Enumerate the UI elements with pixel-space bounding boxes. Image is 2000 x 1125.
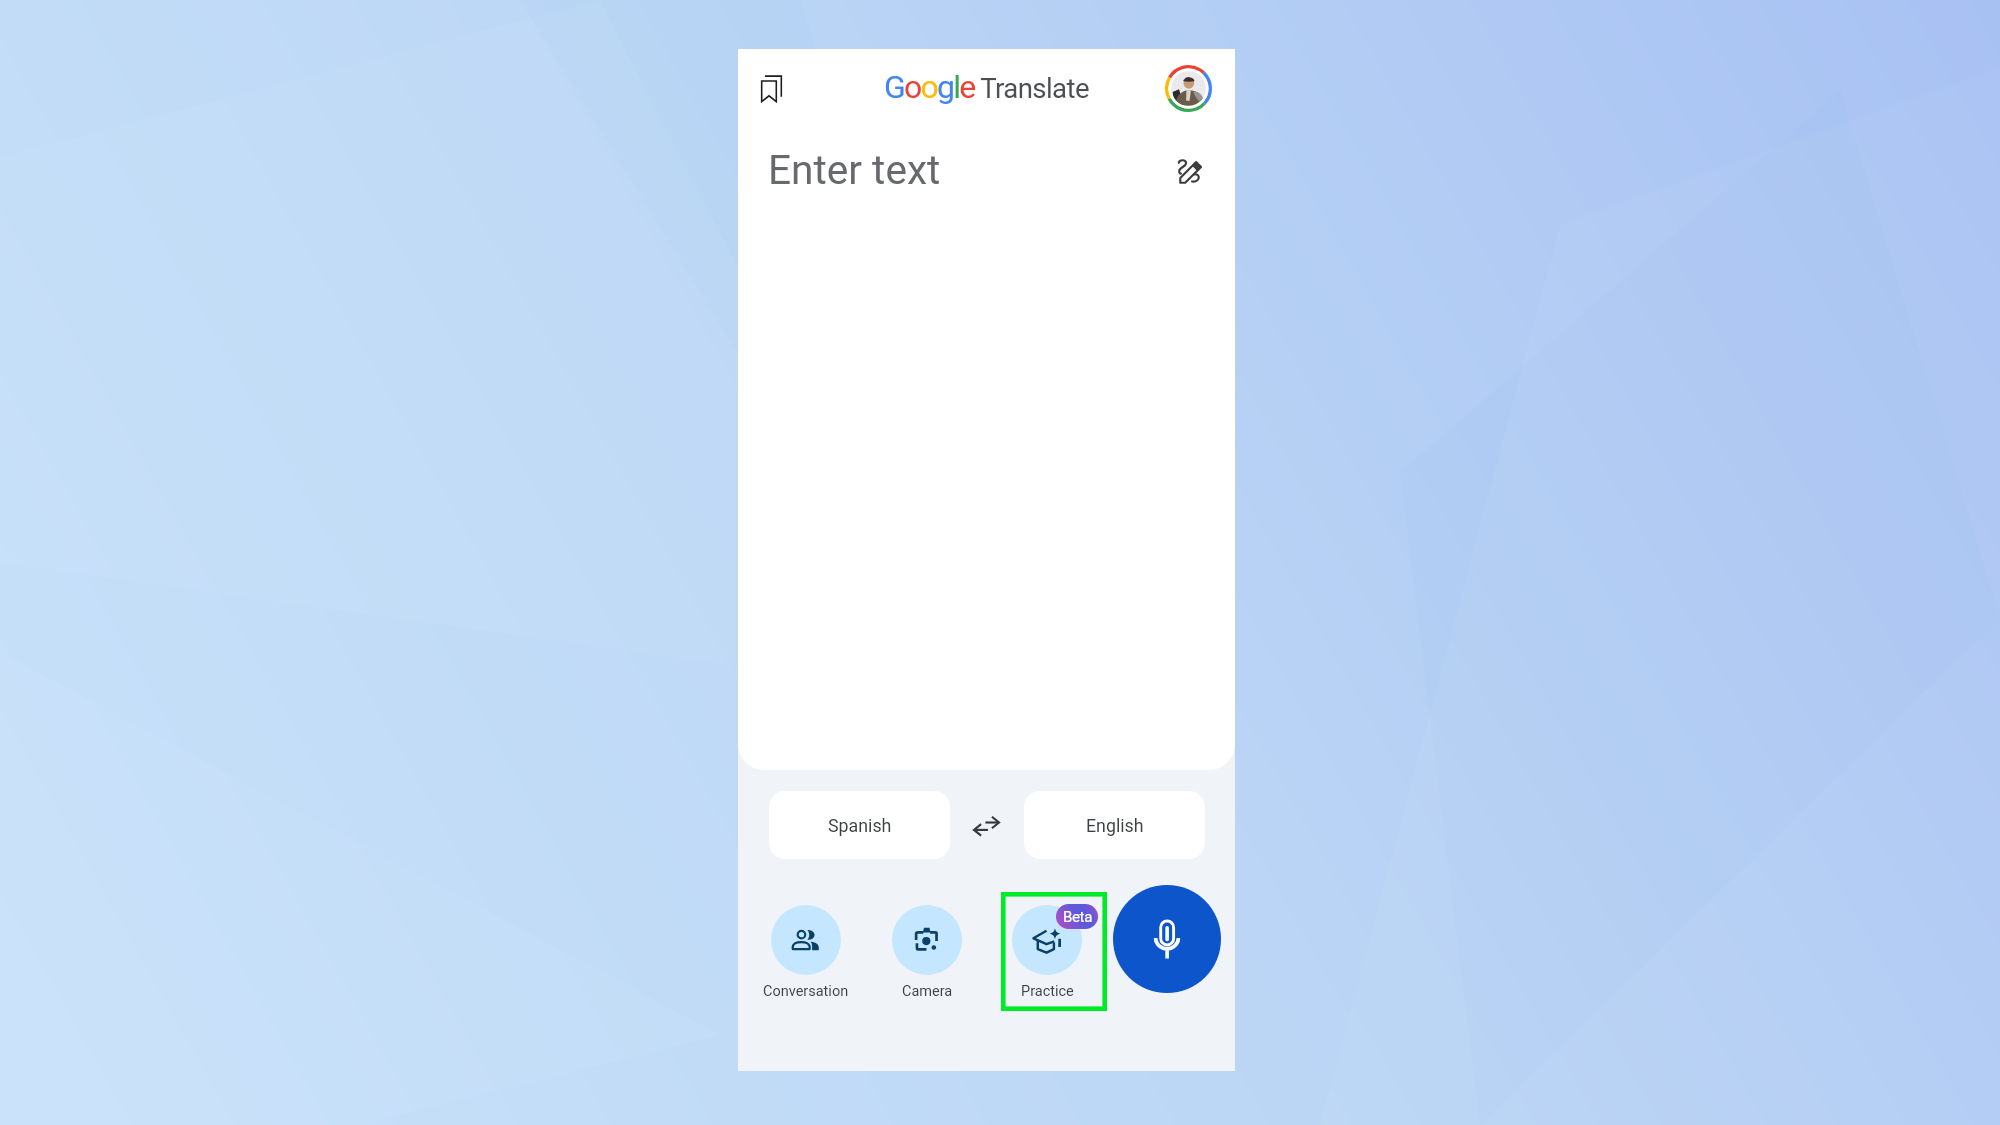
- staticText: Practice: [1021, 983, 1074, 1000]
- button[interactable]: English: [1024, 791, 1205, 859]
- button[interactable]: Voice input: [1113, 885, 1221, 993]
- staticText: Google Translate: [884, 68, 1089, 106]
- button[interactable]: Spanish: [769, 791, 950, 859]
- staticText: Conversation: [763, 983, 849, 1000]
- button[interactable]: Google Translate: [884, 68, 1089, 106]
- button[interactable]: Saved translations: [752, 69, 790, 107]
- button[interactable]: Conversation: [753, 905, 859, 1000]
- button[interactable]: Swap languages: [961, 802, 1011, 850]
- button[interactable]: Practice: [1012, 905, 1098, 1000]
- button[interactable]: Enter text: [756, 131, 1156, 203]
- staticText: Spanish: [828, 815, 892, 836]
- button[interactable]: Camera: [874, 905, 980, 1000]
- button[interactable]: Handwriting input: [1170, 151, 1210, 191]
- staticText: Camera: [902, 983, 953, 1000]
- staticText: Beta: [1063, 908, 1092, 926]
- staticText: English: [1086, 815, 1144, 836]
- button[interactable]: Account: [1165, 65, 1212, 112]
- staticText: Enter text: [768, 146, 941, 194]
